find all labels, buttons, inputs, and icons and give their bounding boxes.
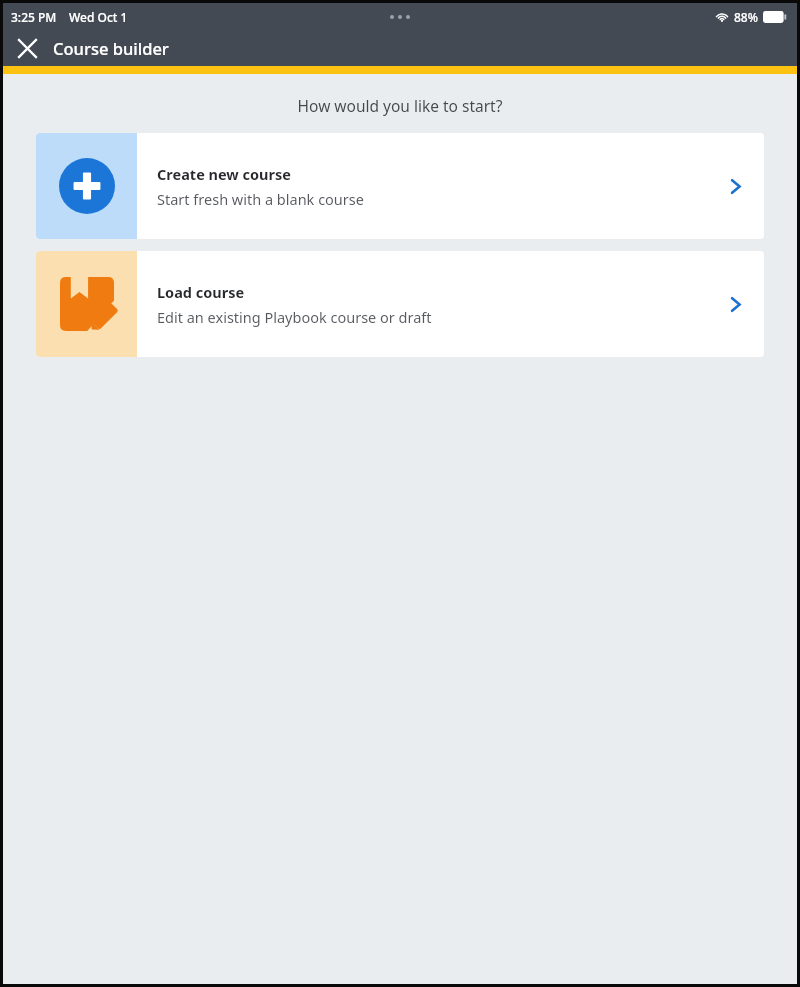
button[interactable]: Load course bbox=[36, 251, 764, 357]
staticText: How would you like to start? bbox=[3, 95, 797, 116]
staticText: Start fresh with a blank course bbox=[157, 189, 364, 209]
staticText: Create new course bbox=[157, 164, 291, 184]
staticText: 88% bbox=[734, 9, 758, 25]
staticText: Wed Oct 1 bbox=[69, 9, 128, 25]
button[interactable]: Close bbox=[3, 30, 51, 66]
staticText: 3:25 PM bbox=[11, 9, 57, 25]
staticText: Load course bbox=[157, 282, 245, 302]
button[interactable]: Create new course bbox=[36, 133, 764, 239]
staticText: Edit an existing Playbook course or draf… bbox=[157, 307, 432, 327]
staticText: Course builder bbox=[53, 37, 169, 59]
